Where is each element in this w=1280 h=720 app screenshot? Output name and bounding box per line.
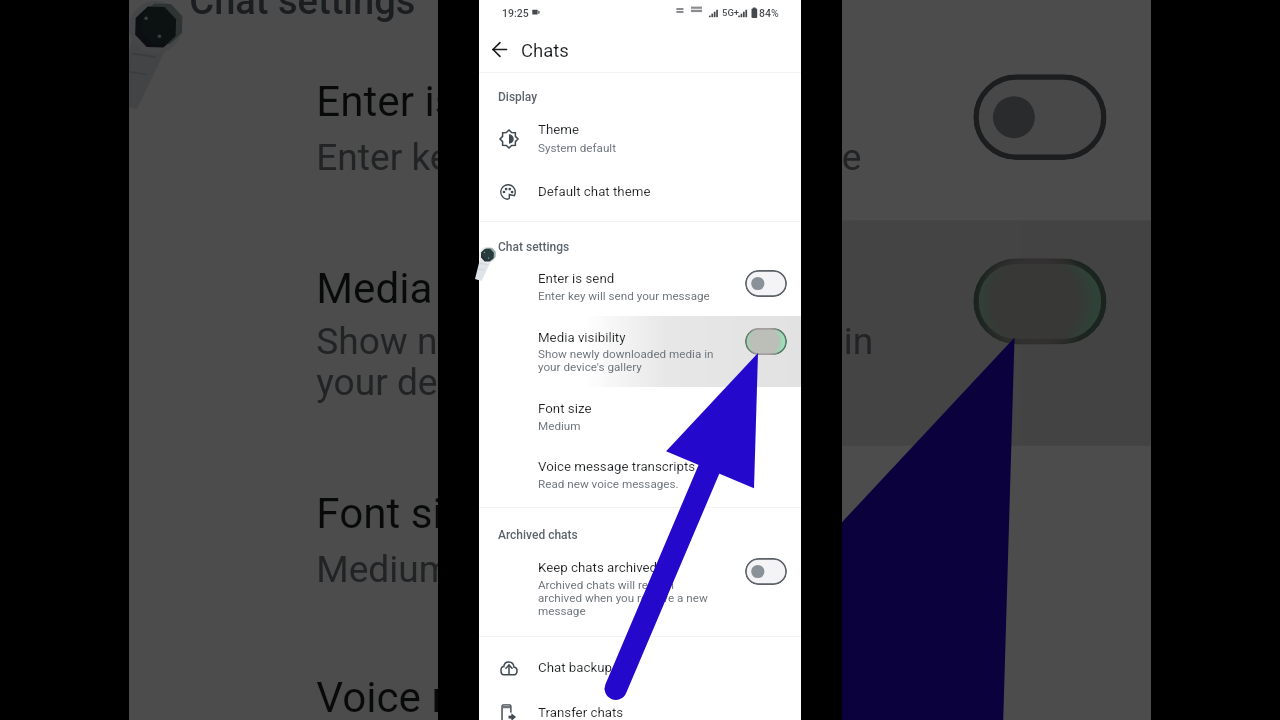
staticText: Media visibility <box>538 330 626 346</box>
button[interactable] <box>479 551 801 625</box>
staticText: Medium <box>538 419 581 433</box>
staticText: Keep chats archived <box>538 560 658 576</box>
staticText: 19:25 <box>502 7 529 19</box>
staticText: Media visibility <box>316 265 596 316</box>
staticText: Voice message transcripts <box>316 674 818 720</box>
staticText: Enter key will send your message <box>316 135 862 179</box>
staticText: 5G+ <box>722 7 740 18</box>
button[interactable] <box>479 262 801 310</box>
staticText: Medium <box>316 547 453 592</box>
staticText: Enter key will send your message <box>538 289 710 303</box>
staticText: your device's gallery <box>538 360 642 374</box>
staticText: Voice message transcripts <box>538 459 696 475</box>
staticText: message <box>538 604 586 618</box>
button[interactable] <box>129 233 1151 423</box>
staticText: Chat backup <box>538 660 613 676</box>
button[interactable] <box>479 392 801 438</box>
staticText: Show newly downloaded media in <box>316 319 875 363</box>
staticText: Display <box>498 90 538 104</box>
button[interactable]: Media visibility on <box>745 328 787 355</box>
staticText: Font size <box>316 490 488 541</box>
button[interactable] <box>479 450 801 496</box>
staticText: Chats <box>521 40 569 62</box>
button[interactable] <box>479 652 801 688</box>
button[interactable]: Off <box>745 558 787 585</box>
button[interactable] <box>479 320 801 380</box>
staticText: Enter is send <box>538 271 615 287</box>
staticText: System default <box>538 141 616 155</box>
staticText: Enter is send <box>316 77 561 128</box>
staticText: archived when you receive a new <box>538 591 708 605</box>
staticText: Transfer chats <box>538 705 624 720</box>
button[interactable] <box>479 697 801 720</box>
staticText: Show newly downloaded media in <box>538 347 714 361</box>
staticText: Default chat theme <box>538 184 651 200</box>
staticText: Archived chats will remain <box>538 578 674 592</box>
button[interactable]: Off <box>745 270 787 297</box>
button[interactable] <box>479 112 801 162</box>
staticText: your device's gallery <box>316 360 646 404</box>
button[interactable] <box>479 174 801 210</box>
staticText: Archived chats <box>498 528 578 542</box>
staticText: 84% <box>759 7 779 19</box>
staticText: Read new voice messages. <box>538 477 679 491</box>
button[interactable] <box>129 646 1151 720</box>
staticText: Theme <box>538 122 580 138</box>
staticText: Chat settings <box>498 240 570 254</box>
staticText: Chat settings <box>189 0 418 23</box>
button[interactable]: Back <box>483 33 515 65</box>
button[interactable]: Media visibility on <box>973 258 1107 344</box>
staticText: Font size <box>538 401 592 417</box>
button[interactable] <box>129 462 1151 608</box>
button[interactable] <box>129 49 1151 201</box>
button[interactable]: Off <box>973 74 1107 160</box>
